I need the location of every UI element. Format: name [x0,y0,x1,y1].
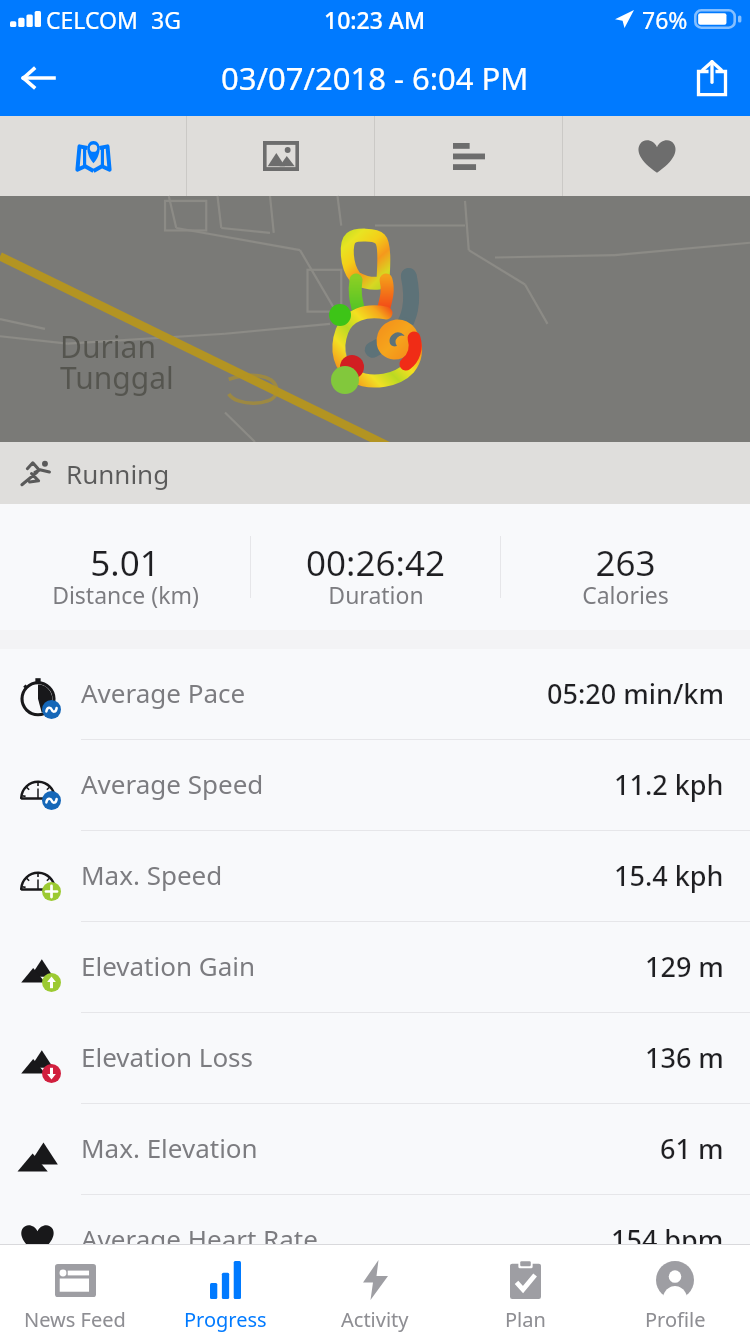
button[interactable]: Elevation Gain [0,922,750,1012]
staticText: Elevation Gain [81,948,256,983]
staticText: Average Pace [81,675,246,710]
button[interactable]: Photos [187,116,374,196]
staticText: Profile [645,1306,706,1333]
staticText: 05:20 min/km [547,675,724,712]
staticText: 00:26:42 [306,539,445,587]
staticText: Activity [341,1306,409,1333]
button[interactable]: Plan [450,1245,600,1333]
staticText: Progress [184,1306,267,1333]
staticText: Distance (km) [52,579,199,610]
staticText: 03/07/2018 - 6:04 PM [221,57,529,99]
staticText: 61 m [660,1130,724,1167]
staticText: 15.4 kph [614,857,724,894]
button[interactable]: Share [674,40,750,116]
staticText: 129 m [645,948,724,985]
button[interactable]: Average Speed [0,740,750,830]
staticText: 76% [642,4,688,35]
button[interactable]: Max. Elevation [0,1104,750,1194]
button[interactable]: Running [0,442,750,504]
staticText: Elevation Loss [81,1039,254,1074]
staticText: 154 bpm [611,1221,724,1258]
staticText: 5.01 [90,539,160,587]
staticText: CELCOM [46,4,138,35]
button[interactable]: Map [0,116,186,196]
button[interactable]: Heart rate [563,116,750,196]
button[interactable]: Progress [150,1245,300,1333]
staticText: 3G [151,4,181,35]
staticText: Running [66,456,170,491]
button[interactable]: News Feed [0,1245,150,1333]
button[interactable]: Profile [600,1245,750,1333]
staticText: Max. Speed [81,857,223,892]
staticText: Plan [505,1306,546,1333]
staticText: Average Speed [81,766,264,801]
staticText: 263 [595,539,656,587]
button[interactable]: Average Pace [0,649,750,739]
staticText: News Feed [24,1306,126,1333]
staticText: Calories [582,579,669,610]
staticText: 11.2 kph [614,766,724,803]
staticText: 10:23 AM [324,4,426,35]
button[interactable]: Average Heart Rate [0,1195,750,1285]
button[interactable]: Splits [375,116,562,196]
staticText: Average Heart Rate [81,1221,318,1256]
staticText: Duration [328,579,424,610]
button[interactable]: Elevation Loss [0,1013,750,1103]
button[interactable]: Max. Speed [0,831,750,921]
button[interactable]: Activity [300,1245,450,1333]
staticText: Max. Elevation [81,1130,258,1165]
staticText: Durian Tunggal [60,326,174,397]
button[interactable]: Back [0,40,76,116]
staticText: 136 m [645,1039,724,1076]
